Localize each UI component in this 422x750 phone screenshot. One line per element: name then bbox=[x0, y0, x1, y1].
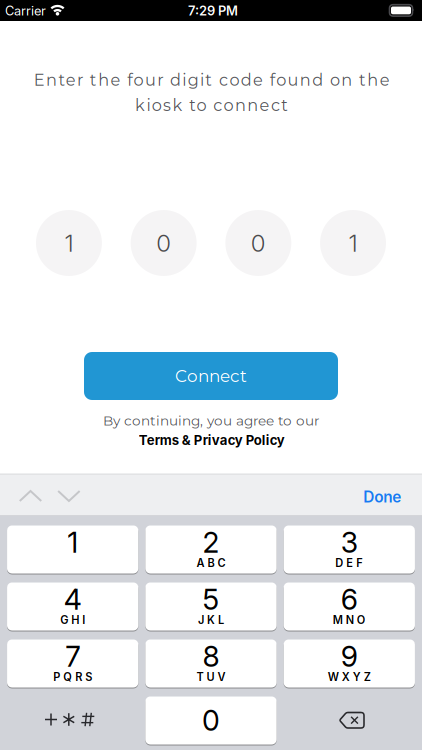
staticText: 0 bbox=[156, 228, 171, 257]
staticText: MNO bbox=[333, 613, 366, 627]
staticText: 7 bbox=[65, 639, 80, 674]
button[interactable]: 5 bbox=[145, 582, 277, 631]
button[interactable]: Next field bbox=[58, 491, 80, 501]
staticText: JKL bbox=[198, 613, 224, 627]
staticText: Terms & Privacy Policy bbox=[139, 432, 285, 448]
staticText: GHI bbox=[60, 613, 85, 627]
staticText: 6 bbox=[341, 582, 358, 617]
staticText: DEF bbox=[335, 556, 363, 570]
button[interactable]: 1 bbox=[7, 525, 138, 574]
staticText: Connect bbox=[175, 366, 247, 386]
staticText: 9 bbox=[341, 639, 358, 674]
staticText: WXYZ bbox=[328, 670, 371, 684]
staticText: Enter the four digit code found on the k… bbox=[33, 70, 389, 115]
staticText: TUV bbox=[196, 670, 225, 684]
button[interactable]: 7 bbox=[7, 639, 138, 688]
staticText: 3 bbox=[341, 525, 358, 560]
button[interactable]: 4 bbox=[7, 582, 138, 631]
button[interactable]: 6 bbox=[284, 582, 415, 631]
staticText: 1 bbox=[67, 525, 78, 560]
button[interactable]: 2 bbox=[145, 525, 277, 574]
button[interactable]: 0 bbox=[145, 696, 277, 745]
button[interactable]: Done bbox=[363, 488, 401, 506]
staticText: By continuing, you agree to our bbox=[103, 412, 319, 429]
staticText: 5 bbox=[202, 582, 219, 617]
button[interactable]: Symbols bbox=[4, 695, 135, 743]
staticText: Carrier bbox=[5, 3, 46, 19]
button[interactable]: 3 bbox=[284, 525, 415, 574]
staticText: 4 bbox=[64, 582, 82, 617]
staticText: 0 bbox=[251, 228, 266, 257]
staticText: 7:29 PM bbox=[188, 3, 238, 19]
staticText: 1 bbox=[349, 228, 358, 257]
staticText: 8 bbox=[202, 639, 219, 674]
staticText: 2 bbox=[202, 525, 219, 560]
button[interactable]: Delete bbox=[286, 696, 418, 744]
staticText: Done bbox=[363, 488, 401, 506]
button[interactable]: 9 bbox=[284, 639, 415, 688]
button[interactable]: Terms & Privacy Policy bbox=[139, 432, 285, 448]
button[interactable]: 8 bbox=[145, 639, 277, 688]
staticText: 1 bbox=[64, 228, 73, 257]
button[interactable]: Previous field bbox=[20, 491, 41, 501]
staticText: ABC bbox=[196, 556, 225, 570]
staticText: 0 bbox=[202, 703, 220, 738]
staticText: PQRS bbox=[53, 670, 92, 684]
button[interactable]: Connect bbox=[84, 352, 338, 400]
